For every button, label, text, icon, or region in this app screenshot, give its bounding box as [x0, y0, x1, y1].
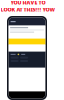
- button[interactable]: Menu: [11, 21, 16, 22]
- button[interactable]: Option: [11, 57, 19, 59]
- button[interactable]: Option: [11, 60, 19, 62]
- staticText: LOOK AT THIS!!! YOW: [0, 6, 55, 13]
- button[interactable]: Option: [20, 57, 28, 59]
- staticText: YOU HAVE TO: [10, 0, 45, 6]
